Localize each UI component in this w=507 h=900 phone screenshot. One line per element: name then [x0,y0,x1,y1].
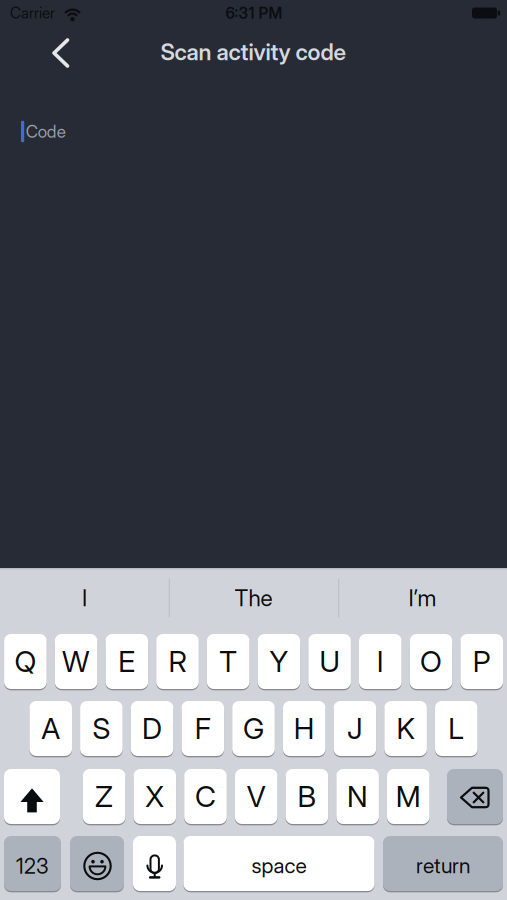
button[interactable]: S [80,700,123,757]
button[interactable]: I’m [339,570,505,626]
staticText: L [448,711,464,746]
staticText: U [320,644,340,679]
staticText: B [297,779,316,814]
button[interactable]: Dictate [133,835,176,892]
button[interactable]: F [181,700,224,757]
button[interactable]: Q [4,633,47,690]
staticText: space [251,853,306,878]
staticText: P [473,644,491,679]
button[interactable]: R [156,633,199,690]
button[interactable]: L [435,700,478,757]
staticText: V [247,779,266,814]
staticText: The [234,584,272,612]
button[interactable]: V [235,768,277,825]
button[interactable]: I [359,633,402,690]
staticText: J [347,711,363,746]
staticText: I [82,584,87,612]
button[interactable]: T [207,633,249,690]
button[interactable]: Back [38,31,82,75]
button[interactable]: O [410,633,452,690]
staticText: H [294,711,315,746]
button[interactable]: J [334,700,376,757]
staticText: 123 [16,853,49,879]
staticText: G [243,711,264,746]
button[interactable]: X [133,768,176,825]
staticText: Scan activity code [160,38,346,66]
button[interactable]: A [29,700,72,757]
staticText: 6:31 PM [225,4,282,22]
staticText: F [195,711,211,746]
button[interactable]: H [283,700,325,757]
staticText: D [142,711,162,746]
staticText: O [420,644,442,679]
button[interactable]: N [336,768,379,825]
button[interactable]: M [387,768,430,825]
staticText: Q [14,644,36,679]
staticText: C [195,779,216,814]
button[interactable]: E [105,633,148,690]
button[interactable]: D [131,700,173,757]
button[interactable]: Shift [4,768,60,825]
button[interactable]: B [286,768,328,825]
staticText: I’m [408,584,436,612]
staticText: T [219,644,237,679]
staticText: A [41,711,60,746]
staticText: Code [26,121,66,142]
button[interactable]: Z [83,768,125,825]
button[interactable]: Y [258,633,300,690]
button[interactable]: Delete [447,768,503,825]
button[interactable]: P [460,633,503,690]
staticText: W [62,644,90,679]
staticText: E [118,644,135,679]
button[interactable]: G [232,700,275,757]
staticText: Carrier [10,4,55,22]
button[interactable]: K [384,700,427,757]
staticText: S [92,711,110,746]
button[interactable]: I [1,570,167,626]
button[interactable]: The [170,570,336,626]
staticText: X [145,779,164,814]
staticText: R [168,644,186,679]
button[interactable]: W [55,633,97,690]
staticText: K [397,711,415,746]
staticText: N [347,779,368,814]
staticText: I [377,644,384,679]
button[interactable]: 123 [4,835,61,892]
button[interactable]: space [183,835,374,892]
button[interactable]: U [308,633,351,690]
button[interactable]: return [383,835,503,892]
button[interactable]: C [184,768,227,825]
staticText: Z [95,779,113,814]
staticText: return [416,853,470,878]
staticText: Y [269,644,288,679]
staticText: M [396,779,421,814]
button[interactable]: Code [16,111,491,151]
button[interactable]: Emoji [70,835,124,892]
